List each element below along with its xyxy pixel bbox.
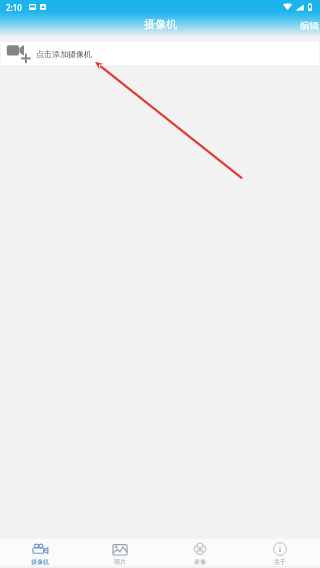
staticText: 编辑 bbox=[300, 20, 319, 32]
staticText: 点击添加摄像机 bbox=[36, 49, 92, 59]
staticText: 摄像机 bbox=[31, 558, 49, 566]
staticText: 照片 bbox=[114, 558, 126, 566]
button[interactable]: 点击添加摄像机 bbox=[1, 42, 319, 65]
staticText: 关于 bbox=[274, 558, 286, 566]
button[interactable]: 录像 bbox=[160, 539, 240, 566]
button[interactable]: 照片 bbox=[80, 539, 160, 566]
button[interactable]: 关于 bbox=[240, 539, 320, 566]
staticText: 2:10 bbox=[6, 2, 22, 13]
staticText: 摄像机 bbox=[144, 17, 177, 31]
staticText: 录像 bbox=[194, 558, 206, 566]
button[interactable]: 编辑 bbox=[290, 17, 320, 37]
button[interactable]: 摄像机 bbox=[0, 539, 80, 566]
